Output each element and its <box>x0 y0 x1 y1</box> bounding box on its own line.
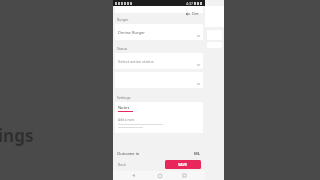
button[interactable]: Back <box>117 160 127 169</box>
staticText: Det <box>192 11 199 16</box>
button[interactable]: Denise Burger <box>115 24 203 40</box>
staticText: Burger <box>117 17 129 22</box>
button[interactable]: Outcome in <box>117 151 201 156</box>
button[interactable]: Navigate up <box>186 8 199 19</box>
staticText: Status <box>117 46 128 51</box>
staticText: Select active status <box>118 59 154 64</box>
staticText: Notes <box>118 105 130 110</box>
staticText: ML <box>194 151 201 156</box>
staticText: Add a note <box>118 118 135 122</box>
staticText: Settings <box>117 95 131 100</box>
button[interactable]: Back <box>129 171 138 180</box>
button[interactable]: Recent apps <box>180 171 189 180</box>
staticText: 4:37 <box>186 1 193 6</box>
staticText: SAVE <box>178 162 188 167</box>
button[interactable]: SAVE <box>165 160 201 169</box>
button[interactable]: Notes <box>115 102 203 133</box>
staticText: Back <box>118 162 126 167</box>
staticText: Outcome in <box>117 151 140 156</box>
button[interactable]: Select active status <box>115 53 203 69</box>
button[interactable]: Home <box>155 171 164 180</box>
staticText: ings <box>0 124 34 147</box>
staticText: Denise Burger <box>118 30 145 35</box>
